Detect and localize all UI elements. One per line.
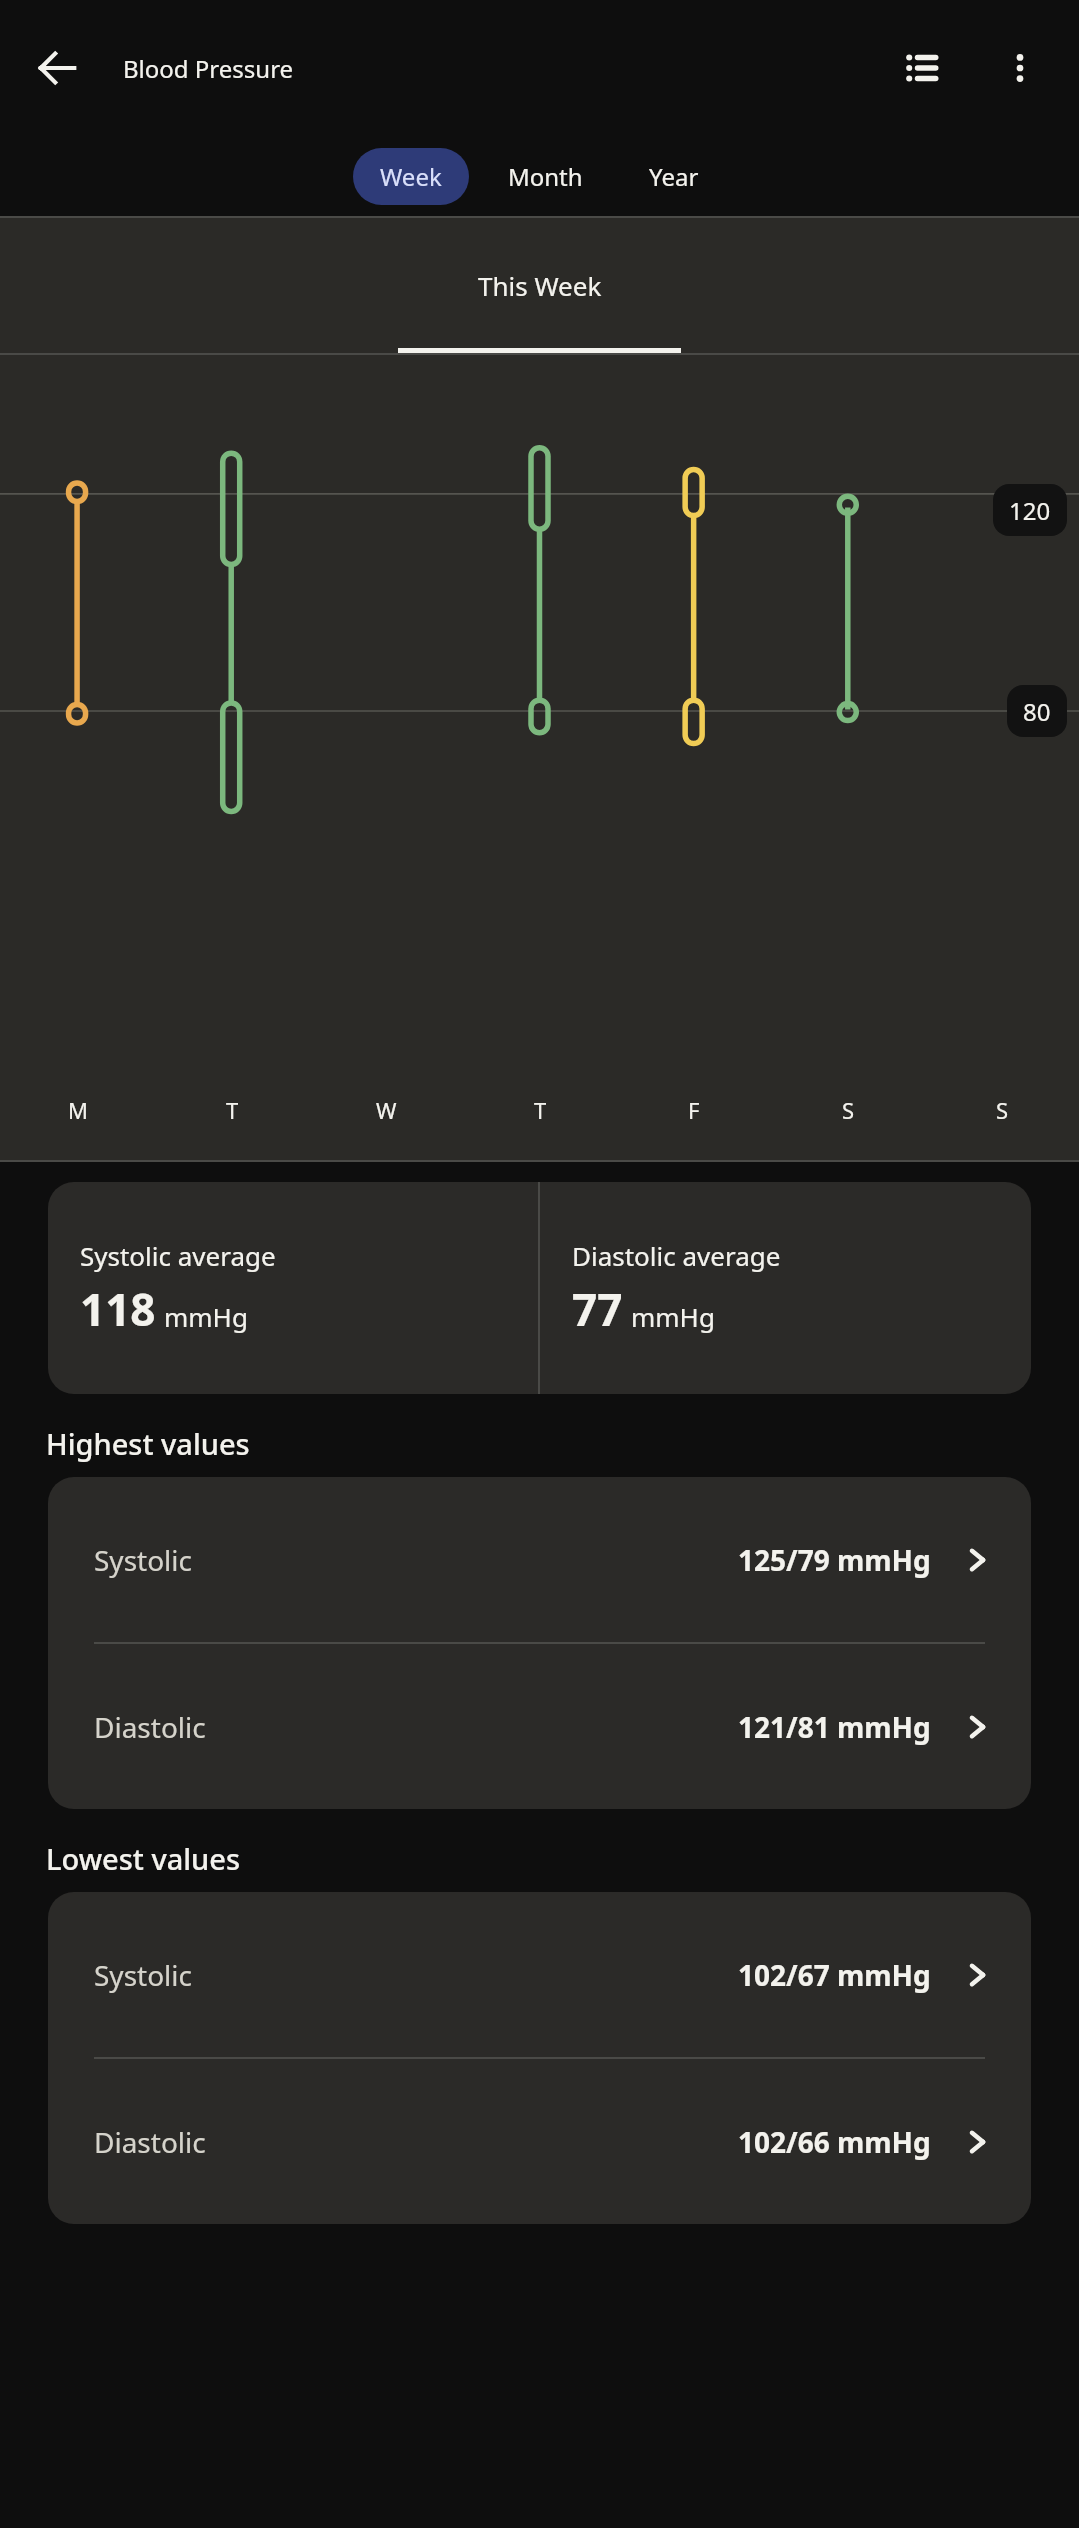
- staticText: Highest values: [46, 1424, 250, 1463]
- button[interactable]: Diastolic: [48, 2059, 1031, 2224]
- button[interactable]: Week: [353, 148, 469, 205]
- staticText: Diastolic average: [572, 1238, 781, 1273]
- staticText: 102/67 mmHg: [738, 1956, 931, 1994]
- staticText: M: [68, 1095, 88, 1125]
- button[interactable]: Year: [622, 148, 726, 205]
- staticText: Lowest values: [46, 1839, 241, 1878]
- button[interactable]: Systolic average: [48, 1182, 538, 1394]
- staticText: Month: [508, 160, 583, 193]
- button[interactable]: Month: [481, 148, 610, 205]
- staticText: W: [376, 1095, 397, 1125]
- staticText: Systolic: [94, 1541, 193, 1579]
- staticText: 121/81 mmHg: [738, 1708, 931, 1746]
- staticText: 102/66 mmHg: [738, 2123, 931, 2161]
- staticText: 77: [572, 1279, 623, 1339]
- staticText: T: [226, 1095, 239, 1125]
- staticText: Diastolic: [94, 2123, 206, 2161]
- staticText: T: [534, 1095, 547, 1125]
- staticText: Blood Pressure: [123, 52, 294, 85]
- button[interactable]: Diastolic: [48, 1644, 1031, 1809]
- staticText: Systolic average: [80, 1238, 276, 1273]
- staticText: Week: [380, 160, 442, 193]
- button[interactable]: Diastolic average: [540, 1182, 1031, 1394]
- staticText: S: [842, 1095, 855, 1125]
- button[interactable]: Systolic: [48, 1892, 1031, 2057]
- staticText: 118: [80, 1279, 156, 1339]
- staticText: mmHg: [631, 1299, 715, 1334]
- staticText: mmHg: [164, 1299, 248, 1334]
- button[interactable]: More options: [983, 31, 1057, 105]
- staticText: 125/79 mmHg: [738, 1541, 931, 1579]
- staticText: Systolic: [94, 1956, 193, 1994]
- button[interactable]: Systolic: [48, 1477, 1031, 1642]
- staticText: Diastolic: [94, 1708, 206, 1746]
- staticText: This Week: [478, 268, 602, 303]
- staticText: S: [996, 1095, 1009, 1125]
- staticText: 120: [1009, 494, 1051, 527]
- staticText: F: [688, 1095, 700, 1125]
- button[interactable]: Back: [20, 31, 94, 105]
- staticText: 80: [1023, 695, 1051, 728]
- button[interactable]: View list: [885, 31, 959, 105]
- staticText: Year: [649, 160, 699, 193]
